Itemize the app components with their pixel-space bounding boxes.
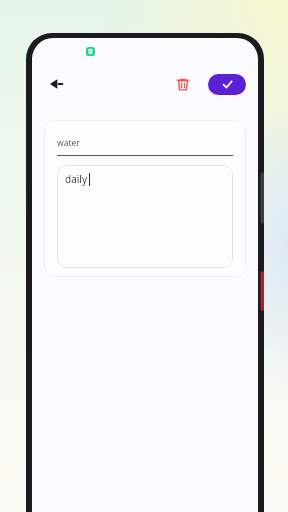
button[interactable]: Delete [170, 71, 196, 97]
button[interactable]: Back [46, 73, 68, 95]
staticText: water [57, 137, 80, 149]
staticText: daily [65, 172, 88, 186]
button[interactable]: daily [57, 165, 233, 268]
button[interactable]: water [57, 131, 233, 155]
button[interactable]: Save [208, 74, 246, 95]
